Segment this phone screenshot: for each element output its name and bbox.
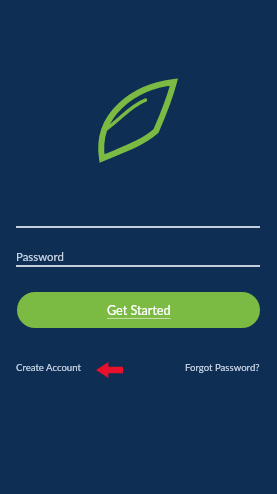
button[interactable]: Password xyxy=(16,250,260,267)
staticText: Get Started xyxy=(107,303,171,318)
other: Create Account xyxy=(96,362,123,378)
staticText: Password xyxy=(16,250,64,264)
button[interactable]: Email xyxy=(16,210,260,228)
button[interactable]: Forgot Password? xyxy=(185,362,260,374)
button[interactable]: Get Started xyxy=(17,292,260,328)
button[interactable]: Create Account xyxy=(16,362,81,374)
